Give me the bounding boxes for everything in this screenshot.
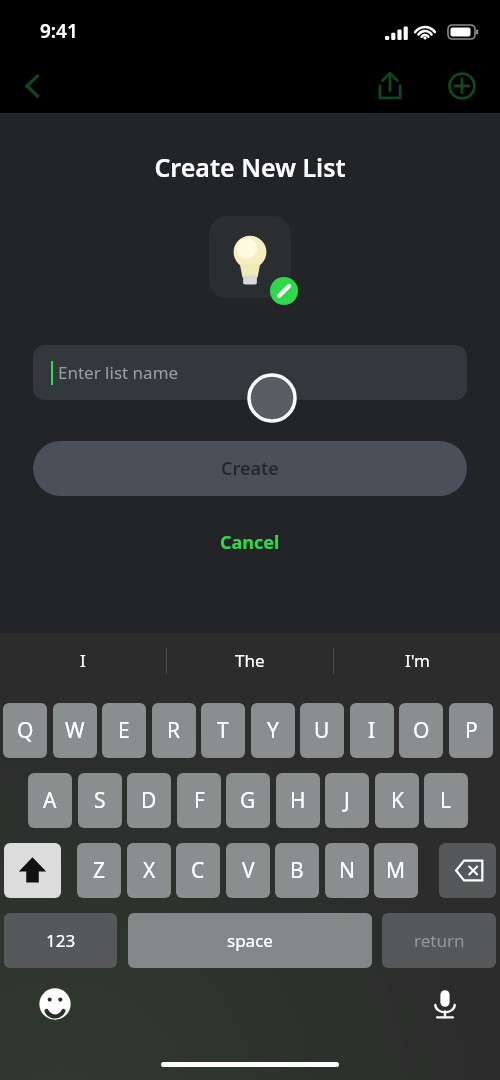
staticText: return bbox=[414, 929, 465, 952]
button[interactable]: R bbox=[152, 703, 196, 758]
button[interactable]: Back bbox=[10, 63, 56, 109]
button[interactable]: Shift bbox=[4, 843, 61, 898]
staticText: O bbox=[413, 716, 430, 745]
button[interactable]: J bbox=[325, 773, 369, 828]
staticText: 9:41 bbox=[40, 18, 78, 44]
staticText: Y bbox=[267, 716, 279, 745]
staticText: A bbox=[43, 786, 57, 815]
button[interactable]: K bbox=[375, 773, 419, 828]
button[interactable]: E bbox=[102, 703, 146, 758]
button[interactable]: U bbox=[300, 703, 344, 758]
button[interactable]: Share bbox=[367, 63, 413, 109]
staticText: Create bbox=[221, 456, 279, 481]
button[interactable]: W bbox=[53, 703, 97, 758]
button[interactable]: return bbox=[382, 913, 496, 968]
button[interactable]: space bbox=[128, 913, 372, 968]
button[interactable]: I bbox=[350, 703, 394, 758]
button[interactable]: Cancel bbox=[0, 520, 500, 564]
button[interactable]: V bbox=[226, 843, 270, 898]
staticText: J bbox=[344, 786, 350, 815]
button[interactable]: Choose icon bbox=[209, 216, 291, 298]
button[interactable]: G bbox=[226, 773, 270, 828]
button[interactable]: Enter list name bbox=[33, 345, 467, 400]
staticText: D bbox=[141, 786, 157, 815]
button[interactable]: D bbox=[127, 773, 171, 828]
button[interactable]: Z bbox=[77, 843, 121, 898]
staticText: U bbox=[314, 716, 330, 745]
staticText: T bbox=[217, 716, 229, 745]
staticText: H bbox=[290, 786, 306, 815]
button[interactable]: Voice input bbox=[422, 981, 468, 1027]
staticText: V bbox=[242, 856, 255, 885]
button[interactable]: Emoji bbox=[32, 981, 78, 1027]
button[interactable]: T bbox=[201, 703, 245, 758]
staticText: Q bbox=[17, 716, 34, 745]
staticText: Create New List bbox=[0, 150, 500, 184]
button[interactable]: 123 bbox=[4, 913, 117, 968]
button[interactable]: Edit icon bbox=[270, 277, 298, 305]
staticText: Z bbox=[93, 856, 106, 885]
button[interactable]: C bbox=[176, 843, 220, 898]
staticText: N bbox=[339, 856, 355, 885]
button[interactable]: O bbox=[399, 703, 443, 758]
staticText: I bbox=[80, 649, 86, 672]
staticText: Enter list name bbox=[58, 361, 179, 384]
button[interactable]: A bbox=[28, 773, 72, 828]
button[interactable]: Create bbox=[33, 441, 467, 496]
staticText: M bbox=[386, 856, 406, 885]
staticText: S bbox=[94, 786, 106, 815]
button[interactable]: S bbox=[78, 773, 122, 828]
staticText: R bbox=[167, 716, 181, 745]
staticText: I'm bbox=[405, 649, 430, 672]
staticText: B bbox=[290, 856, 304, 885]
staticText: E bbox=[118, 716, 130, 745]
staticText: 123 bbox=[46, 929, 76, 952]
staticText: P bbox=[465, 716, 478, 745]
staticText: I bbox=[368, 716, 376, 745]
button[interactable]: Backspace bbox=[439, 843, 496, 898]
staticText: X bbox=[143, 856, 156, 885]
button[interactable]: M bbox=[374, 843, 418, 898]
staticText: L bbox=[440, 786, 452, 815]
staticText: W bbox=[65, 716, 85, 745]
staticText: The bbox=[235, 649, 265, 672]
staticText: space bbox=[227, 929, 273, 952]
staticText: G bbox=[240, 786, 256, 815]
staticText: K bbox=[391, 786, 404, 815]
button[interactable]: X bbox=[127, 843, 171, 898]
button[interactable]: H bbox=[276, 773, 320, 828]
button[interactable]: P bbox=[449, 703, 493, 758]
button[interactable]: Q bbox=[3, 703, 47, 758]
button[interactable]: Add bbox=[439, 63, 485, 109]
staticText: C bbox=[191, 856, 205, 885]
button[interactable]: F bbox=[177, 773, 221, 828]
button[interactable]: L bbox=[424, 773, 468, 828]
button[interactable]: N bbox=[325, 843, 369, 898]
button[interactable]: I bbox=[0, 633, 166, 688]
staticText: F bbox=[194, 786, 205, 815]
button[interactable]: The bbox=[167, 633, 333, 688]
button[interactable]: I'm bbox=[334, 633, 500, 688]
button[interactable]: B bbox=[275, 843, 319, 898]
staticText: Cancel bbox=[220, 530, 280, 555]
button[interactable]: Y bbox=[251, 703, 295, 758]
